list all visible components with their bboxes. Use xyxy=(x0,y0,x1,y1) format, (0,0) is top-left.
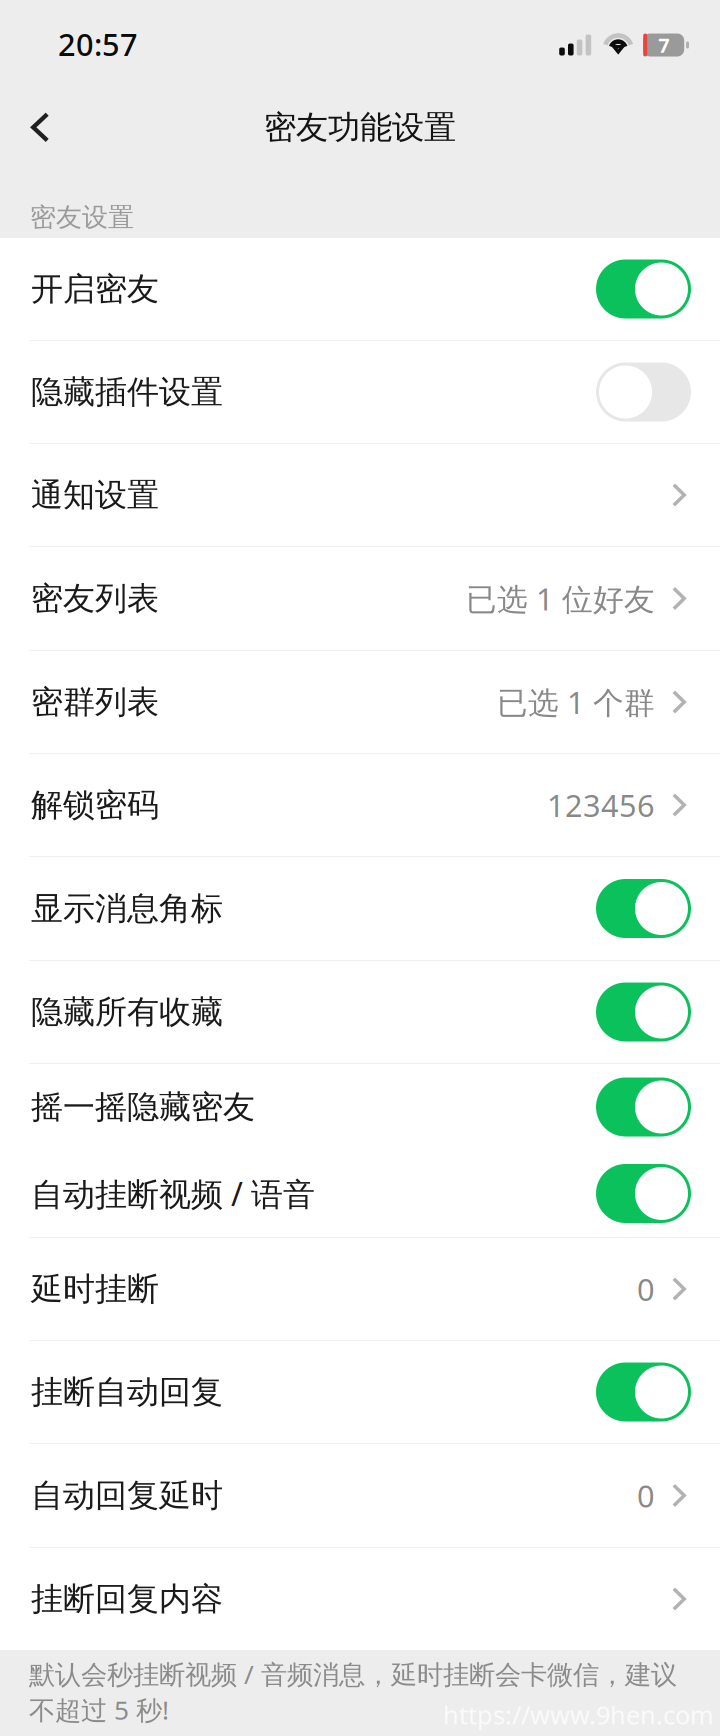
staticText: 通知设置 xyxy=(31,475,159,515)
staticText: 自动回复延时 xyxy=(31,1475,223,1516)
button[interactable]: 开启密友 xyxy=(0,238,720,340)
staticText: 开启密友 xyxy=(31,269,159,309)
staticText: 0 xyxy=(637,1475,655,1516)
staticText: 已选 1 位好友 xyxy=(466,578,655,619)
staticText: 123456 xyxy=(547,784,655,826)
staticText: 密友列表 xyxy=(31,578,159,619)
button[interactable]: 挂断回复内容 xyxy=(0,1548,720,1650)
staticText: 显示消息角标 xyxy=(31,888,223,929)
staticText: 密友设置 xyxy=(30,201,134,234)
button[interactable]: 通知设置 xyxy=(0,444,720,546)
button[interactable]: 解锁密码 xyxy=(0,754,720,856)
staticText: 7 xyxy=(658,31,669,59)
staticText: 自动挂断视频 / 语音 xyxy=(31,1172,315,1215)
staticText: 已选 1 个群 xyxy=(497,681,655,723)
staticText: 密友功能设置 xyxy=(264,107,456,148)
button[interactable]: 隐藏所有收藏 xyxy=(0,961,720,1063)
button[interactable]: 自动挂断视频 / 语音 xyxy=(0,1150,720,1237)
button[interactable]: 挂断自动回复 xyxy=(0,1341,720,1443)
staticText: 20:57 xyxy=(58,23,138,65)
staticText: https://www.9hen.com xyxy=(443,1697,714,1732)
button[interactable]: 密群列表 xyxy=(0,651,720,753)
button[interactable]: 自动回复延时 xyxy=(0,1444,720,1547)
staticText: 延时挂断 xyxy=(31,1269,159,1309)
button[interactable]: 摇一摇隐藏密友 xyxy=(0,1064,720,1150)
staticText: 隐藏所有收藏 xyxy=(31,992,223,1032)
staticText: 摇一摇隐藏密友 xyxy=(31,1087,255,1127)
staticText: 解锁密码 xyxy=(31,785,159,825)
staticText: 密群列表 xyxy=(31,682,159,722)
staticText: 隐藏插件设置 xyxy=(31,372,223,412)
staticText: 挂断回复内容 xyxy=(31,1579,223,1619)
button[interactable]: 密友列表 xyxy=(0,547,720,650)
staticText: 默认会秒挂断视频 / 音频消息，延时挂断会卡微信，建议 不超过 5 秒! xyxy=(29,1656,677,1728)
button[interactable]: 隐藏插件设置 xyxy=(0,341,720,443)
staticText: 0 xyxy=(637,1268,655,1310)
button[interactable]: Back xyxy=(0,88,89,180)
button[interactable]: 延时挂断 xyxy=(0,1238,720,1340)
button[interactable]: 显示消息角标 xyxy=(0,857,720,960)
staticText: 挂断自动回复 xyxy=(31,1372,223,1412)
